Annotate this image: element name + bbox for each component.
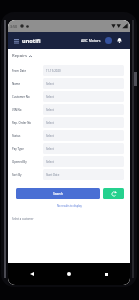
button[interactable]: Rep. Order No	[12, 116, 124, 129]
button[interactable]: From Date	[12, 64, 124, 77]
staticText: Select	[46, 108, 54, 112]
staticText: ABC Motors	[81, 38, 101, 43]
staticText: Start Date	[46, 173, 60, 177]
button[interactable]: Status	[12, 129, 124, 142]
button[interactable]: VIN No	[12, 103, 124, 116]
staticText: Select	[46, 121, 54, 125]
staticText: Status	[12, 134, 21, 138]
staticText: Select	[46, 134, 54, 138]
button[interactable]: Account	[105, 37, 112, 44]
staticText: From Date	[12, 69, 27, 73]
button[interactable]: Reset	[103, 188, 124, 199]
button[interactable]: Home	[64, 269, 74, 279]
button[interactable]: Menu	[12, 37, 20, 45]
staticText: Name	[12, 82, 21, 86]
staticText: Select	[46, 95, 54, 99]
button[interactable]: Name	[12, 77, 124, 90]
button[interactable]: Sort By	[12, 168, 124, 181]
staticText: Sort By	[12, 173, 22, 177]
staticText: Customer No	[12, 95, 30, 99]
button[interactable]: Opened By	[12, 155, 124, 168]
staticText: 11-19-2020	[46, 69, 61, 73]
staticText: Select	[46, 147, 54, 151]
staticText: unotifi	[22, 37, 41, 45]
button[interactable]: Pay Type	[12, 142, 124, 155]
staticText: Select	[46, 82, 54, 86]
staticText: Pay Type	[12, 147, 24, 151]
button[interactable]: Notifications	[116, 37, 123, 44]
staticText: Rep. Order No	[12, 121, 32, 125]
button[interactable]: Back	[27, 269, 37, 279]
button[interactable]: Search	[16, 188, 100, 199]
staticText: Repairs	[12, 53, 27, 59]
button[interactable]: Repairs	[12, 53, 32, 59]
staticText: 3:50	[10, 24, 18, 29]
button[interactable]: Customer No	[12, 90, 124, 103]
staticText: VIN No	[12, 108, 22, 112]
staticText: No results to display	[57, 204, 82, 208]
staticText: Opened By	[12, 160, 27, 164]
staticText: Select a customer	[12, 217, 34, 221]
staticText: Search	[53, 192, 64, 196]
button[interactable]: Recents	[101, 269, 111, 279]
staticText: Select	[46, 160, 54, 164]
